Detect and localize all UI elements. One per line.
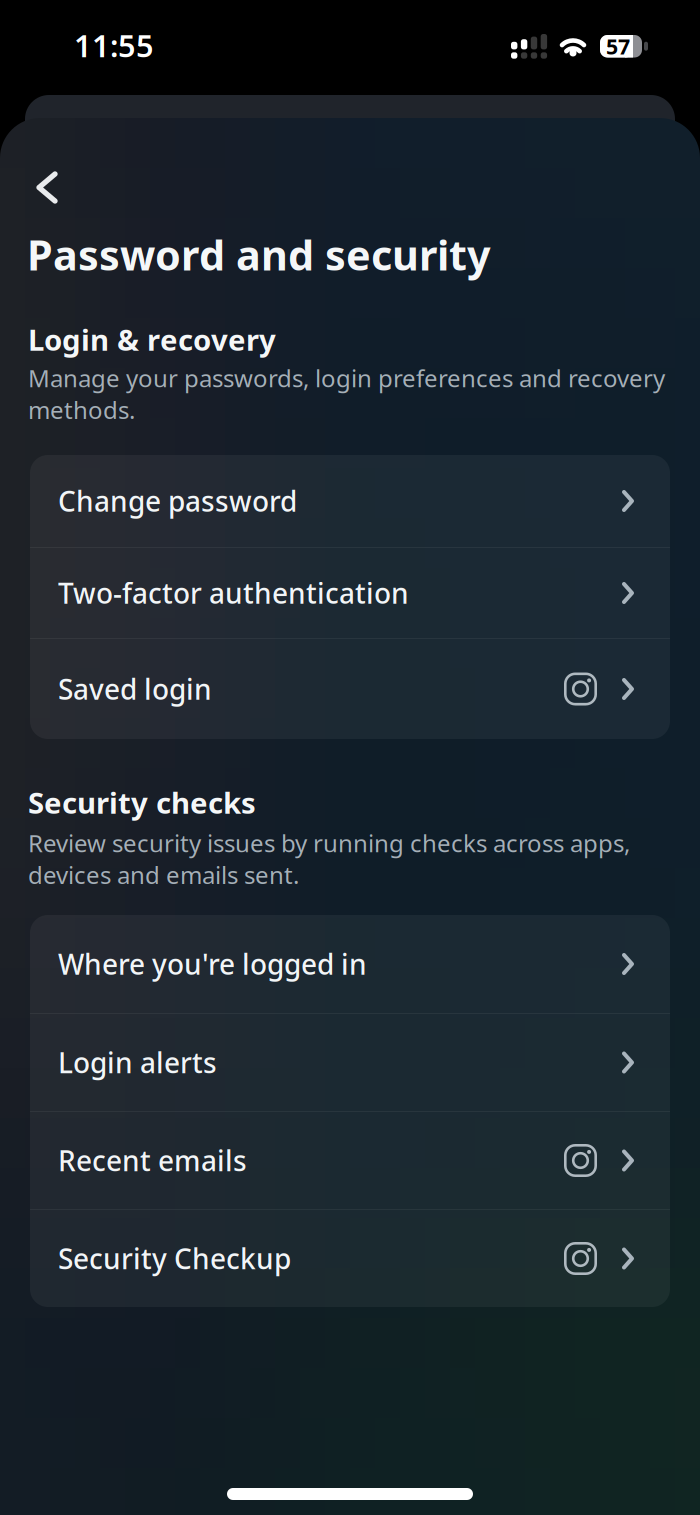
staticText: Recent emails <box>58 1142 247 1179</box>
staticText: Security Checkup <box>58 1240 291 1277</box>
staticText: Security checks <box>28 783 256 822</box>
staticText: Two-factor authentication <box>58 574 409 612</box>
button[interactable]: Security Checkup <box>30 1210 670 1307</box>
staticText: Saved login <box>58 670 212 708</box>
staticText: Change password <box>58 482 297 520</box>
staticText: 57 <box>606 32 630 60</box>
staticText: Where you're logged in <box>58 945 367 983</box>
staticText: Review security issues by running checks… <box>28 827 630 891</box>
staticText: Login & recovery <box>28 320 276 359</box>
staticText: Manage your passwords, login preferences… <box>28 362 665 426</box>
button[interactable]: Two-factor authentication <box>30 548 670 638</box>
button[interactable]: Where you're logged in <box>30 915 670 1013</box>
staticText: Password and security <box>27 227 491 282</box>
button[interactable]: Recent emails <box>30 1112 670 1209</box>
button[interactable]: Saved login <box>30 639 670 739</box>
staticText: Login alerts <box>58 1044 217 1081</box>
staticText: 11:55 <box>74 25 154 66</box>
button[interactable]: Back <box>29 164 65 211</box>
button[interactable]: Change password <box>30 455 670 547</box>
button[interactable]: Login alerts <box>30 1014 670 1111</box>
